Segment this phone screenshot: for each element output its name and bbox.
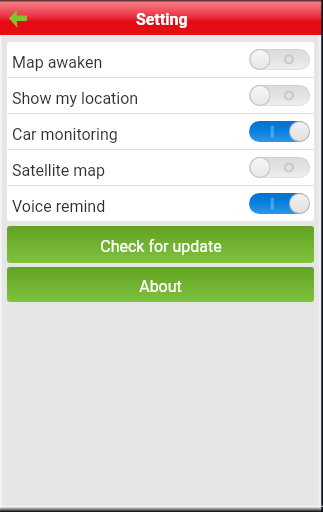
button[interactable]: Map awaken [7,42,314,77]
staticText: Show my location [12,89,139,108]
button[interactable]: About [7,267,314,302]
staticText: About [139,277,182,296]
button[interactable]: Toggle on [249,121,310,142]
button[interactable]: Toggle off [249,85,310,106]
button[interactable]: Car monitoring [7,114,314,149]
staticText: Voice remind [12,197,106,216]
button[interactable]: Voice remind [7,186,314,221]
button[interactable]: Back [9,10,27,28]
button[interactable]: Toggle off [249,49,310,70]
staticText: Satellite map [12,161,105,180]
button[interactable]: Check for update [7,226,314,263]
staticText: Check for update [100,237,222,256]
staticText: Map awaken [12,53,103,72]
button[interactable]: Toggle off [249,157,310,178]
button[interactable]: Satellite map [7,150,314,185]
staticText: Setting [136,10,188,29]
button[interactable]: Toggle on [249,193,310,214]
staticText: Car monitoring [12,125,118,144]
button[interactable]: Show my location [7,78,314,113]
